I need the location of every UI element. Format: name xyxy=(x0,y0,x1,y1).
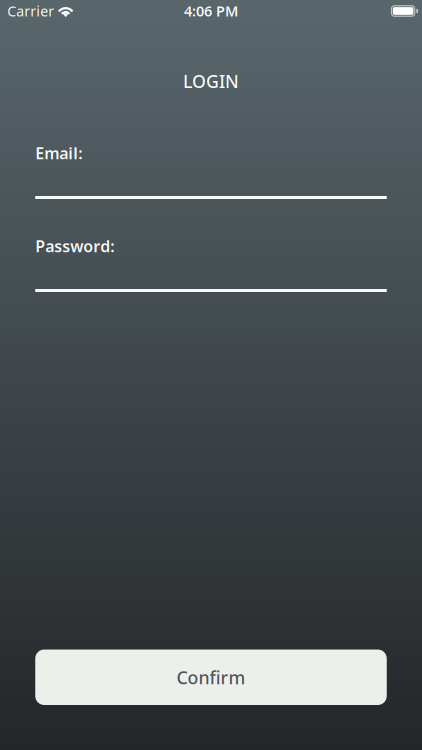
button[interactable]: Confirm xyxy=(35,649,387,705)
staticText: Password: xyxy=(35,235,114,257)
staticText: 4:06 PM xyxy=(184,1,238,21)
staticText: Carrier xyxy=(7,1,54,21)
staticText: Email: xyxy=(35,142,82,164)
staticText: LOGIN xyxy=(183,69,239,93)
staticText: Confirm xyxy=(176,665,245,689)
